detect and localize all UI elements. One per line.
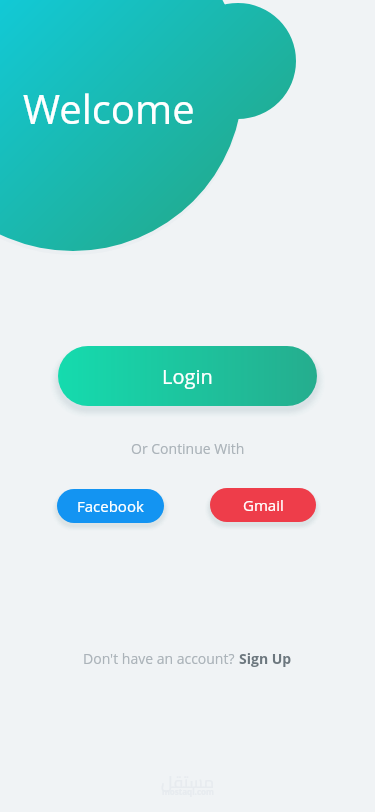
button[interactable]: Sign Up	[239, 649, 292, 668]
staticText: Gmail	[243, 495, 284, 515]
staticText: Or Continue With	[131, 439, 245, 458]
staticText: Welcome	[23, 81, 195, 135]
button[interactable]: Login	[58, 346, 317, 406]
staticText: Sign Up	[239, 649, 292, 668]
staticText: مستقل	[161, 766, 215, 798]
staticText: Don't have an account?	[83, 649, 239, 668]
staticText: Login	[162, 363, 213, 390]
button[interactable]: Facebook	[57, 489, 164, 523]
staticText: Facebook	[77, 496, 144, 516]
button[interactable]: Gmail	[210, 488, 316, 522]
staticText: mostaql.com	[162, 786, 214, 797]
